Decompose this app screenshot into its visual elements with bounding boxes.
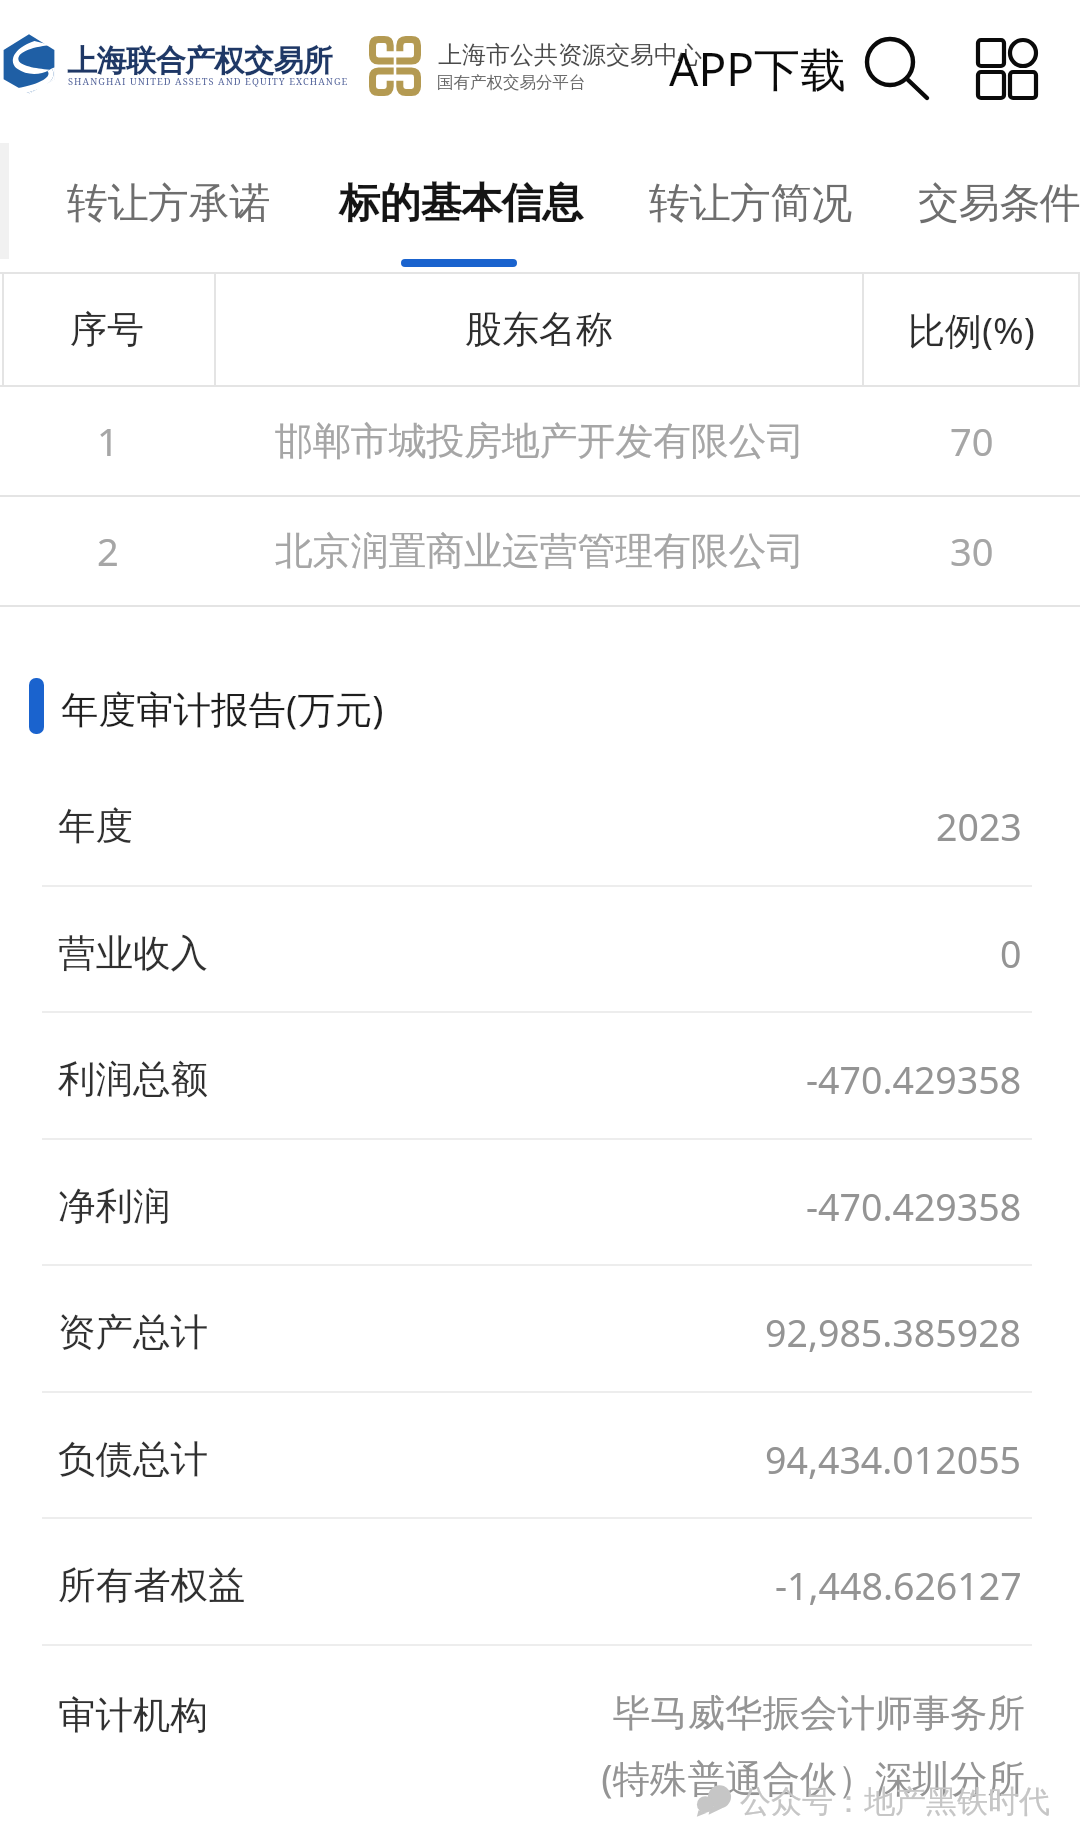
button[interactable]: 审计机构 毕马威华振会计师事务所(特殊普通合伙）深圳分所	[0, 1646, 1080, 1829]
button[interactable]: 利润总额	[0, 1016, 1080, 1143]
staticText: 标的基本信息	[339, 178, 583, 230]
staticText: 所有者权益	[58, 1562, 246, 1609]
button[interactable]: 净利润	[0, 1143, 1080, 1270]
staticText: 审计机构	[58, 1692, 208, 1739]
staticText: 利润总额	[58, 1056, 208, 1103]
button[interactable]: 上海联合产权交易所	[0, 20, 345, 108]
button[interactable]: Menu	[966, 28, 1048, 110]
button[interactable]: APP下载	[661, 29, 855, 108]
staticText: 0	[1000, 928, 1022, 979]
staticText: 94,434.012055	[765, 1434, 1022, 1485]
staticText: SHANGHAI UNITED ASSETS AND EQUITY EXCHAN…	[68, 75, 349, 88]
button[interactable]: 1	[0, 387, 1080, 495]
staticText: 1	[97, 415, 119, 467]
staticText: 92,985.385928	[765, 1307, 1022, 1358]
button[interactable]: 年度	[0, 763, 1080, 890]
staticText: 转让方简况	[649, 178, 852, 230]
staticText: 年度审计报告(万元)	[61, 683, 384, 734]
button[interactable]: 负债总计	[0, 1396, 1080, 1523]
button[interactable]: 营业收入	[0, 890, 1080, 1017]
staticText: 交易条件	[918, 178, 1080, 230]
staticText: 序号	[70, 306, 144, 353]
button[interactable]: 标的基本信息	[325, 160, 597, 248]
staticText: -470.429358	[806, 1181, 1022, 1232]
staticText: 70	[950, 415, 994, 467]
staticText: 邯郸市城投房地产开发有限公司	[275, 417, 805, 465]
staticText: 公众号：地产黑铁时代	[740, 1782, 1050, 1821]
staticText: 30	[950, 525, 994, 577]
staticText: 国有产权交易分平台	[437, 72, 586, 93]
staticText: 年度	[58, 803, 133, 850]
button[interactable]: 所有者权益	[0, 1522, 1080, 1649]
button[interactable]: 交易条件	[904, 160, 1080, 248]
staticText: -470.429358	[806, 1054, 1022, 1105]
button[interactable]: 转让方简况	[635, 160, 866, 248]
staticText: 上海联合产权交易所	[67, 42, 333, 80]
staticText: 比例(%)	[908, 304, 1035, 355]
staticText: 转让方承诺	[67, 178, 270, 230]
staticText: 2	[97, 525, 119, 577]
button[interactable]: 2	[0, 497, 1080, 605]
staticText: 净利润	[58, 1183, 171, 1230]
staticText: 上海市公共资源交易中心	[438, 40, 702, 70]
staticText: -1,448.626127	[775, 1560, 1022, 1611]
staticText: APP下载	[669, 37, 847, 100]
button[interactable]: Search	[855, 24, 935, 104]
button[interactable]: 资产总计	[0, 1269, 1080, 1396]
staticText: 营业收入	[58, 930, 208, 977]
staticText: (特殊普通合伙）深圳分所	[601, 1752, 1025, 1803]
staticText: 股东名称	[465, 306, 613, 353]
button[interactable]: 转让方承诺	[53, 160, 284, 248]
staticText: 毕马威华振会计师事务所	[612, 1690, 1025, 1737]
staticText: 负债总计	[58, 1436, 208, 1483]
staticText: 2023	[936, 801, 1022, 852]
staticText: 北京润置商业运营管理有限公司	[275, 527, 805, 575]
staticText: 资产总计	[58, 1309, 208, 1356]
